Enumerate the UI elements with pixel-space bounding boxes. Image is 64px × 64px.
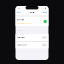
button[interactable]: Back xyxy=(17,12,21,13)
button[interactable]: Appearance xyxy=(15,41,48,48)
staticText: Appearance xyxy=(17,44,27,46)
staticText: Overview xyxy=(17,19,24,21)
staticText: Notifications xyxy=(17,37,25,38)
staticText: 9:41 xyxy=(18,7,21,9)
staticText: Syncing in progress xyxy=(17,22,32,24)
staticText: Done xyxy=(43,12,47,13)
staticText: ıll ◗ xyxy=(45,7,46,9)
button[interactable]: Done xyxy=(43,12,47,13)
staticText: Details xyxy=(29,12,34,13)
staticText: OPTIONS xyxy=(17,29,23,31)
button[interactable]: Notifications xyxy=(15,34,48,41)
staticText: Back xyxy=(17,12,21,13)
